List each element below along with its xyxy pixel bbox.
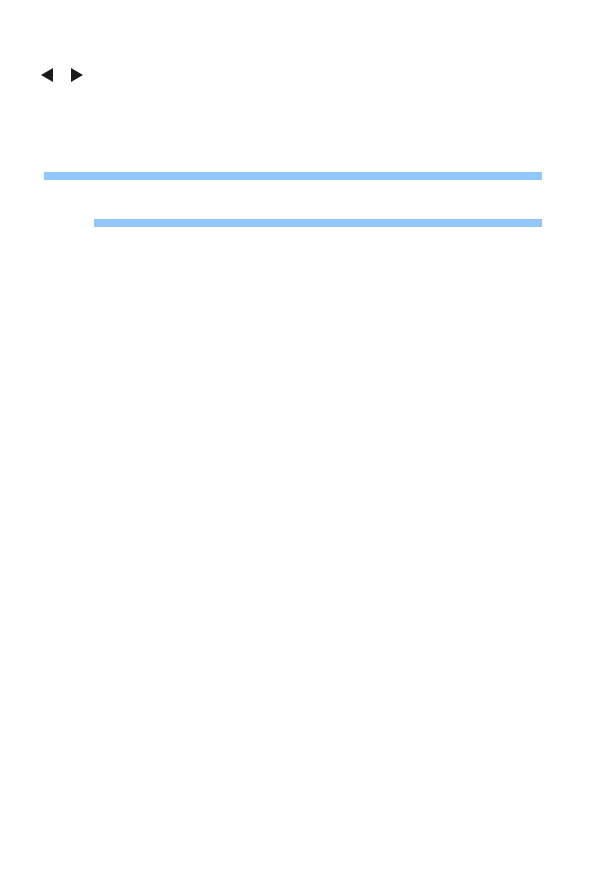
button[interactable]: Previous bbox=[36, 63, 58, 87]
button[interactable]: Next bbox=[66, 63, 88, 87]
